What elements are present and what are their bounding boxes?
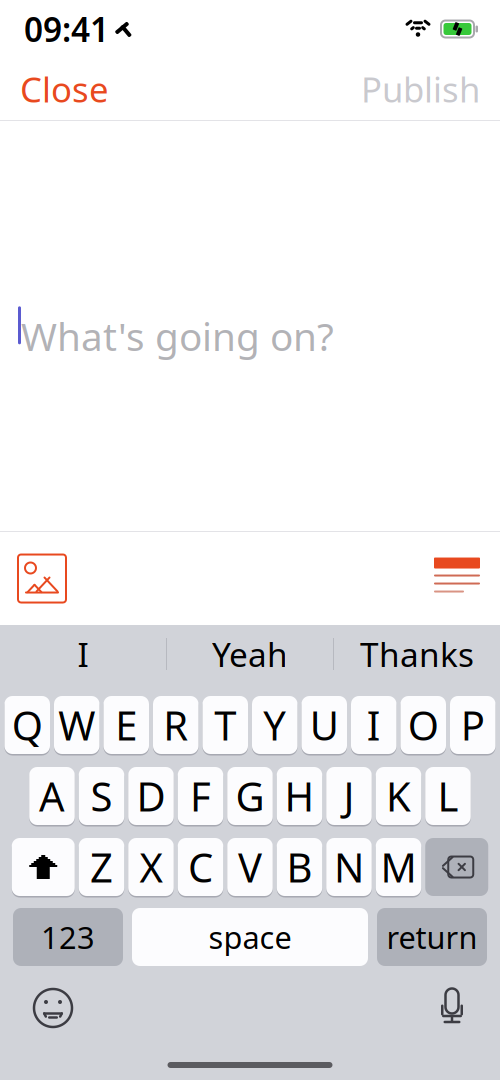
button[interactable]: A: [29, 766, 75, 826]
button[interactable]: Delete: [425, 837, 488, 897]
button[interactable]: Y: [252, 695, 297, 755]
staticText: U: [310, 698, 339, 751]
staticText: P: [461, 698, 485, 751]
staticText: space: [208, 917, 291, 957]
staticText: Y: [263, 698, 286, 751]
button[interactable]: X: [128, 837, 174, 897]
button[interactable]: I: [351, 695, 396, 755]
button[interactable]: L: [425, 766, 471, 826]
button[interactable]: Q: [4, 695, 50, 755]
button[interactable]: Publish: [341, 58, 500, 120]
button[interactable]: Close: [0, 58, 129, 120]
staticText: X: [139, 840, 162, 893]
button[interactable]: M: [376, 837, 421, 897]
button[interactable]: Emoji: [22, 977, 84, 1039]
button[interactable]: J: [326, 766, 372, 826]
staticText: K: [386, 769, 411, 822]
staticText: O: [408, 698, 439, 751]
staticText: Publish: [361, 66, 480, 112]
staticText: T: [214, 698, 236, 751]
button[interactable]: space: [132, 908, 368, 966]
staticText: B: [286, 840, 312, 893]
staticText: E: [115, 698, 137, 751]
button[interactable]: O: [400, 695, 446, 755]
button[interactable]: G: [227, 766, 273, 826]
button[interactable]: Thanks: [334, 625, 500, 683]
staticText: M: [380, 840, 416, 893]
staticText: H: [284, 769, 314, 822]
button[interactable]: Add photo: [2, 533, 82, 623]
button[interactable]: Z: [79, 837, 124, 897]
staticText: R: [163, 698, 188, 751]
button[interactable]: F: [178, 766, 223, 826]
staticText: D: [136, 769, 165, 822]
button[interactable]: D: [128, 766, 174, 826]
staticText: What's going on?: [21, 310, 334, 362]
staticText: return: [386, 917, 477, 957]
staticText: W: [58, 698, 95, 751]
button[interactable]: S: [79, 766, 124, 826]
staticText: 123: [41, 917, 95, 957]
button[interactable]: W: [54, 695, 99, 755]
button[interactable]: C: [178, 837, 223, 897]
staticText: Close: [20, 66, 109, 112]
staticText: F: [190, 769, 211, 822]
button[interactable]: T: [202, 695, 248, 755]
button[interactable]: N: [326, 837, 372, 897]
staticText: N: [334, 840, 364, 893]
button[interactable]: I: [0, 625, 166, 683]
staticText: C: [188, 840, 213, 893]
staticText: J: [343, 769, 354, 822]
button[interactable]: V: [227, 837, 273, 897]
button[interactable]: Yeah: [167, 625, 333, 683]
staticText: 09:41: [24, 7, 109, 51]
button[interactable]: Shift: [12, 837, 75, 897]
button[interactable]: U: [301, 695, 347, 755]
staticText: V: [238, 840, 262, 893]
button[interactable]: E: [103, 695, 149, 755]
staticText: G: [235, 769, 264, 822]
staticText: A: [39, 769, 65, 822]
button[interactable]: R: [153, 695, 198, 755]
button[interactable]: H: [277, 766, 322, 826]
staticText: Z: [90, 840, 113, 893]
button[interactable]: Dictation: [426, 976, 478, 1040]
button[interactable]: return: [377, 908, 487, 966]
button[interactable]: B: [277, 837, 322, 897]
staticText: I: [77, 632, 88, 676]
staticText: Q: [12, 698, 43, 751]
staticText: S: [90, 769, 112, 822]
staticText: Yeah: [212, 632, 288, 676]
staticText: L: [437, 769, 458, 822]
button[interactable]: 123: [13, 908, 123, 966]
staticText: I: [367, 698, 381, 751]
button[interactable]: Text formatting: [416, 535, 498, 621]
button[interactable]: P: [450, 695, 495, 755]
staticText: Thanks: [360, 632, 474, 676]
button[interactable]: K: [376, 766, 421, 826]
